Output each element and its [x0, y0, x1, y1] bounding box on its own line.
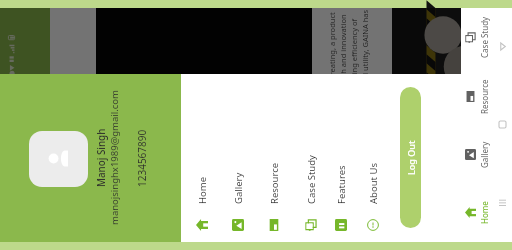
staticText: Features	[335, 165, 348, 204]
staticText: Log Out	[405, 140, 417, 175]
staticText: Gallery	[479, 141, 490, 168]
staticText: Case Study	[305, 155, 318, 204]
button[interactable]: Case Study	[461, 8, 492, 67]
staticText: Gallery	[232, 172, 245, 204]
staticText: manojsinghx1989@gmail.com	[108, 90, 121, 225]
staticText: Home	[479, 201, 490, 224]
button[interactable]: Resource	[264, 74, 284, 242]
staticText: Case Study	[479, 16, 490, 58]
staticText: which is the fruitful result of scientif…	[338, 14, 348, 233]
other: Back	[499, 43, 506, 50]
staticText: 1234567890	[135, 129, 149, 187]
button[interactable]: Case Study	[301, 74, 321, 242]
staticText: Since 2010, by collaborating with NASA a…	[327, 12, 337, 233]
button[interactable]: Features	[331, 74, 351, 242]
staticText: Home	[196, 176, 209, 204]
staticText: the paint with outstanding energy saving…	[360, 9, 370, 233]
button[interactable]: Resource	[461, 67, 492, 126]
other: Recent apps	[499, 199, 506, 206]
staticText: Resource	[479, 79, 490, 114]
staticText: About Us	[367, 163, 380, 204]
button[interactable]: Home	[461, 184, 492, 242]
staticText: Manoj Singh	[95, 128, 108, 187]
button[interactable]: Log Out	[400, 87, 421, 228]
button[interactable]: Gallery	[461, 126, 492, 184]
button[interactable]: About Us	[363, 74, 383, 242]
staticText: combined together. Owing to the heat-ref…	[349, 18, 359, 233]
staticText: Resource	[268, 162, 281, 204]
button[interactable]: Home	[192, 74, 212, 242]
button[interactable]: Gallery	[228, 74, 248, 242]
other: Home	[499, 121, 506, 128]
